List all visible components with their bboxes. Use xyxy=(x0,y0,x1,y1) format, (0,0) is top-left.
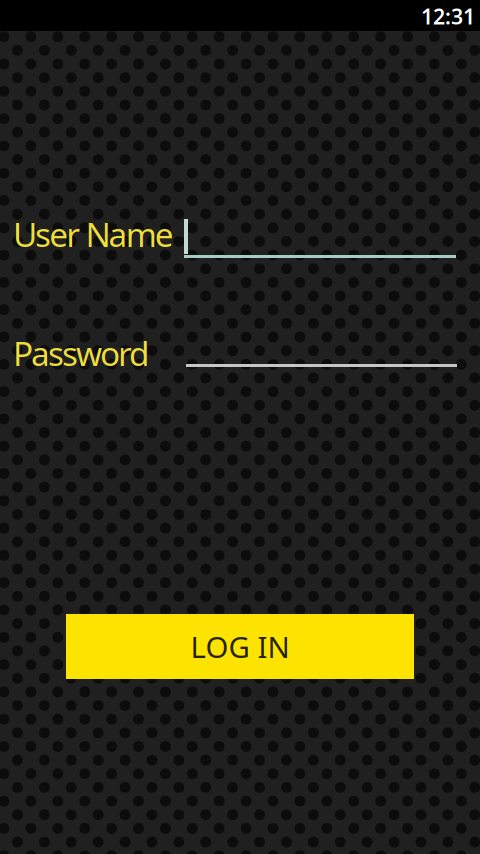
staticText: LOG IN xyxy=(190,627,289,666)
staticText: Password xyxy=(13,331,150,375)
button[interactable]: LOG IN xyxy=(66,614,414,679)
staticText: User Name xyxy=(13,212,174,256)
button[interactable]: Password xyxy=(0,325,480,373)
staticText: 12:31 xyxy=(421,2,475,30)
button[interactable]: User Name xyxy=(0,206,480,264)
